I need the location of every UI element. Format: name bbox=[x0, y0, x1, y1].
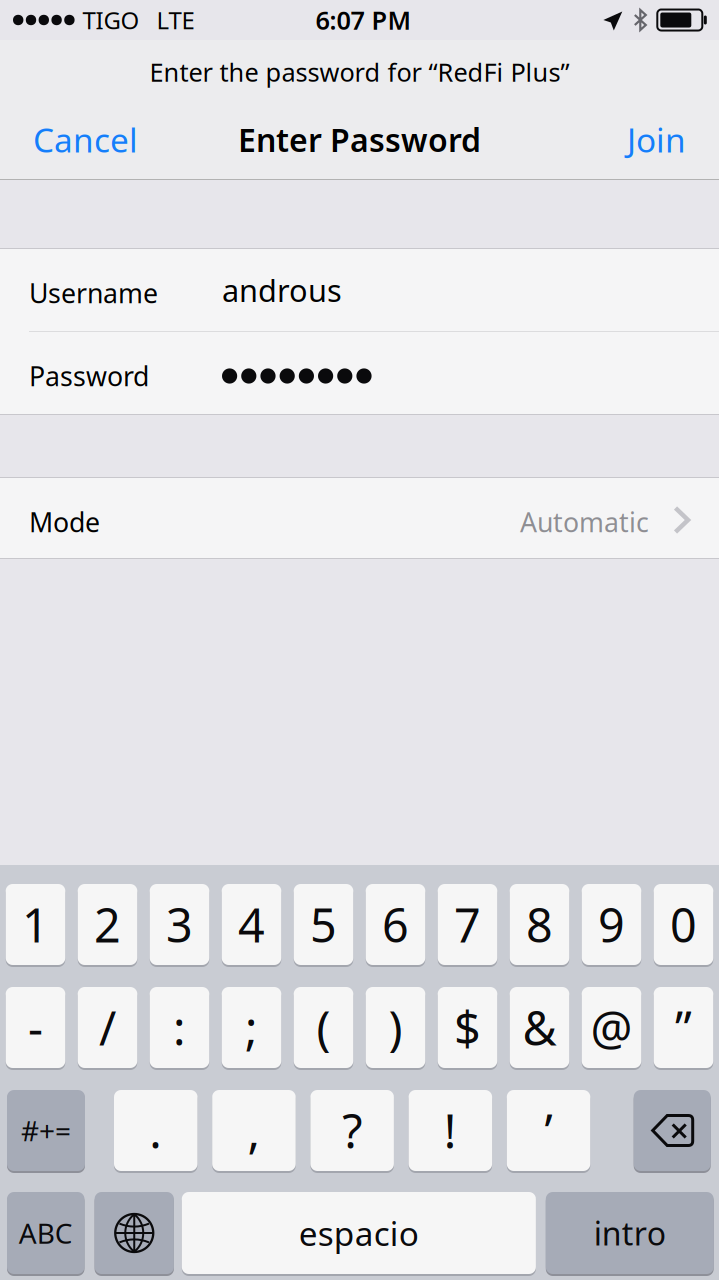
staticText: ABC bbox=[19, 1214, 73, 1252]
staticText: Enter Password bbox=[238, 118, 481, 161]
button[interactable]: 1 bbox=[6, 884, 65, 965]
staticText: 6:07 PM bbox=[315, 3, 411, 37]
staticText: 1 bbox=[22, 893, 49, 955]
staticText: espacio bbox=[299, 1211, 419, 1255]
button[interactable]: ! bbox=[409, 1090, 492, 1171]
button[interactable]: Delete bbox=[634, 1090, 711, 1171]
button[interactable]: , bbox=[212, 1090, 296, 1171]
button[interactable]: 0 bbox=[654, 884, 713, 965]
staticText: 0 bbox=[670, 893, 697, 955]
staticText: - bbox=[28, 996, 43, 1058]
button[interactable]: @ bbox=[582, 987, 641, 1068]
button[interactable]: 4 bbox=[222, 884, 281, 965]
button[interactable]: ? bbox=[310, 1090, 394, 1171]
staticText: 8 bbox=[526, 893, 553, 955]
button[interactable]: & bbox=[510, 987, 569, 1068]
staticText: 6 bbox=[382, 893, 409, 955]
staticText: 4 bbox=[238, 893, 265, 955]
staticText: 7 bbox=[454, 893, 481, 955]
staticText: Cancel bbox=[33, 117, 138, 162]
button[interactable]: 8 bbox=[510, 884, 569, 965]
button[interactable]: - bbox=[6, 987, 65, 1068]
staticText: , bbox=[247, 1099, 260, 1161]
staticText: 9 bbox=[598, 893, 625, 955]
button[interactable]: intro bbox=[546, 1192, 714, 1274]
staticText: androus bbox=[222, 270, 342, 310]
button[interactable]: ’ bbox=[507, 1090, 590, 1171]
button[interactable]: Next keyboard bbox=[95, 1192, 174, 1274]
button[interactable]: 3 bbox=[150, 884, 209, 965]
staticText: Enter the password for “RedFi Plus” bbox=[149, 55, 569, 89]
button[interactable]: ; bbox=[222, 987, 281, 1068]
button[interactable]: 5 bbox=[294, 884, 353, 965]
button[interactable]: Mode bbox=[0, 478, 719, 558]
staticText: Automatic bbox=[520, 504, 649, 540]
button[interactable]: 6 bbox=[366, 884, 425, 965]
button[interactable]: . bbox=[114, 1090, 197, 1171]
staticText: ’ bbox=[544, 1099, 552, 1161]
staticText: $ bbox=[454, 996, 481, 1058]
button[interactable]: Password bbox=[0, 332, 719, 414]
staticText: 5 bbox=[310, 893, 337, 955]
staticText: TIGO bbox=[83, 4, 140, 36]
staticText: Mode bbox=[29, 504, 100, 540]
button[interactable]: $ bbox=[438, 987, 497, 1068]
staticText: intro bbox=[594, 1212, 666, 1254]
staticText: LTE bbox=[157, 4, 195, 36]
button[interactable]: ” bbox=[654, 987, 713, 1068]
staticText: 2 bbox=[94, 893, 121, 955]
staticText: / bbox=[99, 996, 116, 1058]
button[interactable]: Username bbox=[0, 249, 719, 331]
staticText: ! bbox=[444, 1099, 457, 1161]
staticText: ? bbox=[342, 1099, 362, 1161]
staticText: Username bbox=[29, 275, 158, 311]
staticText: ” bbox=[675, 996, 692, 1058]
button[interactable]: 7 bbox=[438, 884, 497, 965]
button[interactable]: 2 bbox=[78, 884, 137, 965]
staticText: & bbox=[522, 996, 556, 1058]
staticText: #+= bbox=[21, 1112, 71, 1149]
button[interactable]: Cancel bbox=[17, 105, 154, 174]
staticText: Join bbox=[627, 117, 686, 162]
button[interactable]: : bbox=[150, 987, 209, 1068]
button[interactable]: ( bbox=[294, 987, 353, 1068]
button[interactable]: 9 bbox=[582, 884, 641, 965]
button[interactable]: espacio bbox=[182, 1192, 536, 1274]
staticText: 3 bbox=[166, 893, 193, 955]
staticText: Password bbox=[29, 358, 149, 394]
button[interactable]: ) bbox=[366, 987, 425, 1068]
staticText: ; bbox=[245, 996, 258, 1058]
staticText: ) bbox=[388, 996, 402, 1058]
staticText: @ bbox=[590, 996, 632, 1058]
staticText: : bbox=[173, 996, 186, 1058]
button[interactable]: #+= bbox=[7, 1090, 85, 1171]
button[interactable]: ABC bbox=[7, 1192, 84, 1274]
button[interactable]: Join bbox=[611, 105, 702, 174]
staticText: ( bbox=[316, 996, 330, 1058]
staticText: . bbox=[149, 1099, 162, 1161]
button[interactable]: / bbox=[78, 987, 137, 1068]
